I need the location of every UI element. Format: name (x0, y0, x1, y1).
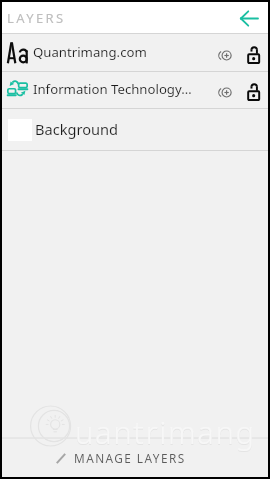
staticText: MANAGE LAYERS (74, 450, 186, 466)
staticText: Background (35, 119, 119, 139)
button[interactable]: Opacity (213, 43, 237, 67)
button[interactable]: Information Technology… (2, 72, 268, 108)
button[interactable]: Opacity (213, 80, 237, 104)
button[interactable]: MANAGE LAYERS (2, 446, 268, 470)
button[interactable]: Lock layer (241, 43, 265, 67)
button[interactable]: Back (236, 5, 262, 31)
staticText: LAYERS (7, 9, 66, 27)
staticText: Quantrimang.com (33, 43, 213, 61)
button[interactable]: Background (2, 109, 268, 150)
staticText: Information Technology… (33, 80, 213, 98)
button[interactable]: Quantrimang.com (2, 34, 268, 71)
button[interactable]: Lock layer (241, 80, 265, 104)
